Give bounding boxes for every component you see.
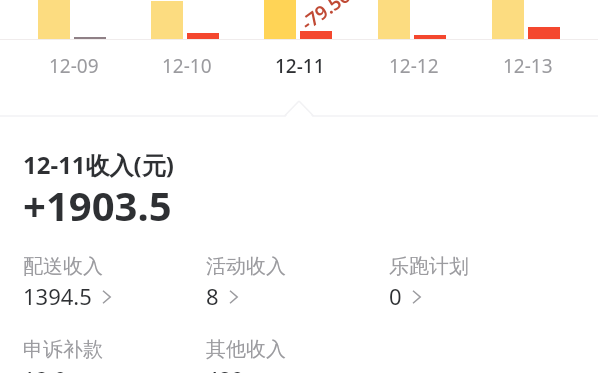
- other: View details: [412, 289, 422, 305]
- staticText: 1394.5: [23, 281, 92, 311]
- button[interactable]: 乐跑计划: [389, 254, 572, 311]
- staticText: 12-12: [389, 53, 439, 79]
- button[interactable]: 活动收入: [206, 254, 389, 311]
- staticText: 12-09: [49, 53, 99, 79]
- button[interactable]: 12-10: [128, 0, 241, 116]
- staticText: 12-13: [503, 53, 553, 79]
- button[interactable]: 12-13: [469, 0, 583, 116]
- button[interactable]: 其他收入: [206, 337, 389, 373]
- button[interactable]: 12-09: [15, 0, 128, 116]
- staticText: 0: [389, 281, 402, 311]
- staticText: 12-11收入(元): [23, 148, 174, 181]
- button[interactable]: 12-11: [241, 0, 355, 116]
- button[interactable]: 12-12: [355, 0, 469, 116]
- staticText: 12-11: [275, 53, 325, 79]
- button[interactable]: 配送收入: [23, 254, 206, 311]
- staticText: 其他收入: [206, 337, 286, 362]
- staticText: 12-10: [162, 53, 212, 79]
- button[interactable]: 申诉补款: [23, 337, 206, 373]
- staticText: 申诉补款: [23, 337, 103, 362]
- staticText: 配送收入: [23, 254, 103, 279]
- other: View details: [229, 289, 239, 305]
- staticText: 489: [206, 364, 244, 373]
- other: View details: [102, 289, 112, 305]
- staticText: 活动收入: [206, 254, 286, 279]
- staticText: 12.0: [23, 364, 67, 373]
- staticText: 8: [206, 281, 219, 311]
- staticText: 乐跑计划: [389, 254, 469, 279]
- staticText: +1903.5: [23, 178, 172, 232]
